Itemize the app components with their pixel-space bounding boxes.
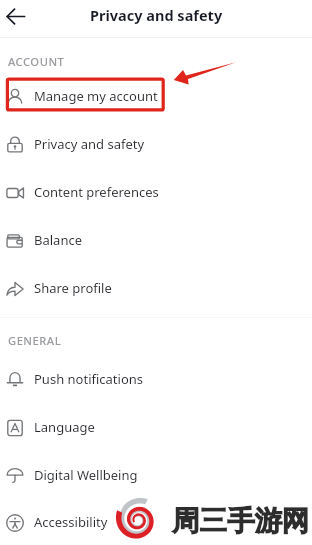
staticText: Accessibility: [34, 513, 108, 531]
staticText: Balance: [34, 231, 82, 249]
staticText: Manage my account: [34, 87, 158, 105]
button[interactable]: Language: [0, 404, 312, 452]
staticText: Share profile: [34, 279, 112, 297]
staticText: Language: [34, 418, 95, 436]
staticText: Content preferences: [34, 183, 159, 201]
staticText: Push notifications: [34, 370, 144, 388]
staticText: 周三手游网: [172, 504, 310, 539]
button[interactable]: Back: [2, 3, 28, 29]
button[interactable]: Digital Wellbeing: [0, 452, 312, 500]
button[interactable]: Share profile: [0, 265, 312, 313]
button[interactable]: Content preferences: [0, 169, 312, 217]
staticText: ACCOUNT: [8, 54, 65, 69]
staticText: GENERAL: [8, 333, 62, 348]
button[interactable]: Manage my account: [0, 73, 312, 121]
staticText: Privacy and safety: [34, 135, 145, 153]
button[interactable]: Balance: [0, 217, 312, 265]
button[interactable]: Push notifications: [0, 356, 312, 404]
button[interactable]: Accessibility: [0, 500, 312, 545]
staticText: Privacy and safety: [90, 5, 223, 25]
button[interactable]: Privacy and safety: [0, 121, 312, 169]
staticText: Digital Wellbeing: [34, 466, 138, 484]
